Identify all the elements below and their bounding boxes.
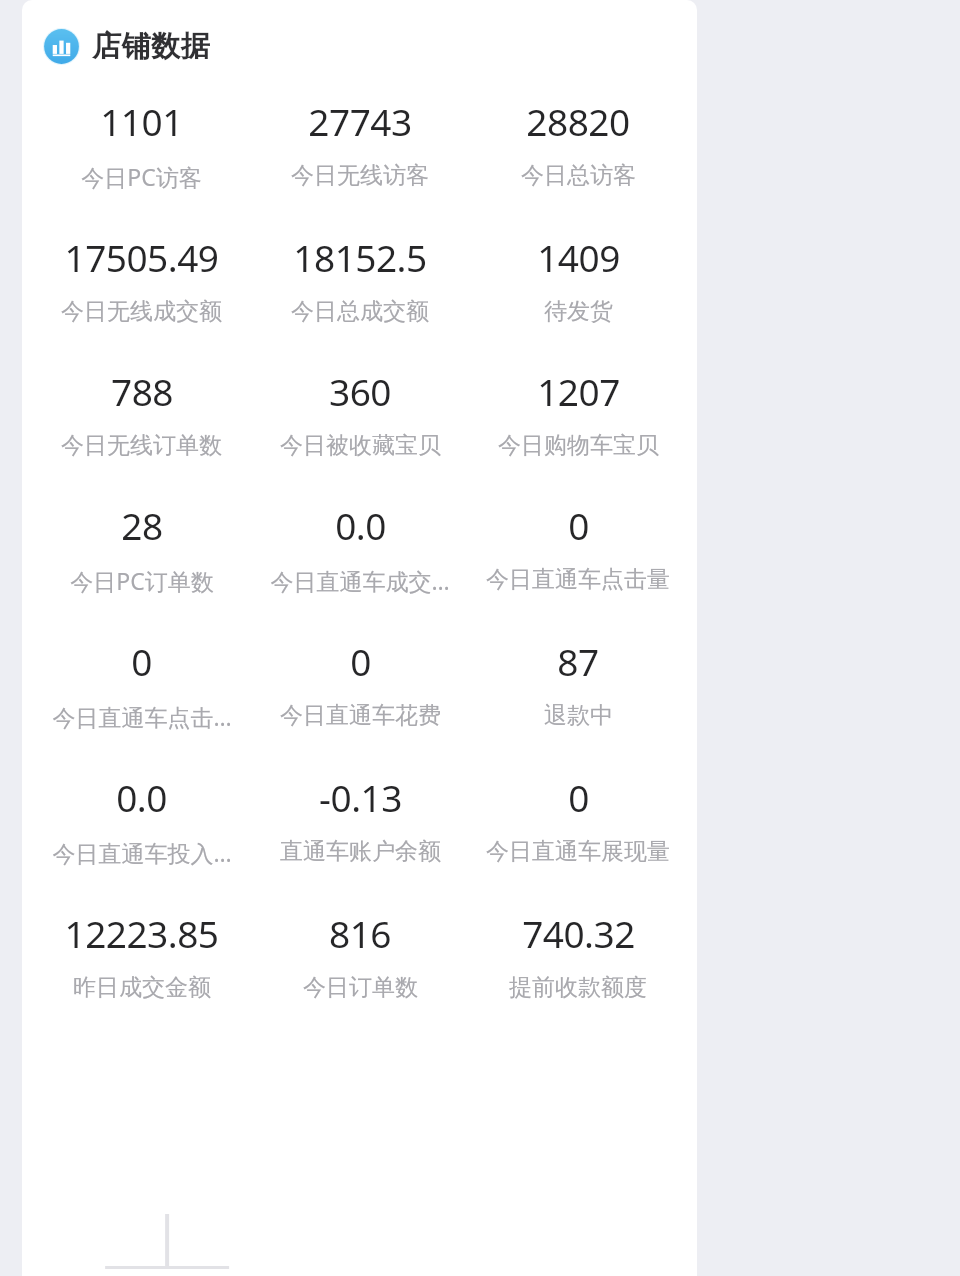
button[interactable]: 816 bbox=[251, 908, 469, 1002]
button[interactable]: 28 bbox=[32, 500, 251, 596]
staticText: 今日直通车投入… bbox=[52, 837, 232, 868]
button[interactable]: 788 bbox=[32, 366, 251, 460]
staticText: 17505.49 bbox=[64, 232, 219, 282]
other: 店铺数据 bbox=[43, 28, 80, 65]
button[interactable]: 0 bbox=[469, 500, 687, 594]
staticText: 今日直通车成交… bbox=[270, 565, 450, 596]
staticText: 店铺数据 bbox=[92, 28, 210, 65]
button[interactable]: 18152.5 bbox=[251, 232, 469, 326]
staticText: 待发货 bbox=[544, 297, 613, 326]
staticText: 今日直通车花费 bbox=[280, 701, 441, 730]
staticText: 今日直通车点击… bbox=[52, 701, 232, 732]
button[interactable]: 740.32 bbox=[469, 908, 687, 1002]
staticText: 18152.5 bbox=[293, 232, 427, 282]
button[interactable]: 12223.85 bbox=[32, 908, 251, 1002]
staticText: 28 bbox=[121, 500, 163, 550]
button[interactable]: 1409 bbox=[469, 232, 687, 326]
staticText: 1101 bbox=[100, 96, 183, 146]
staticText: 今日总访客 bbox=[521, 161, 636, 190]
button[interactable]: 1207 bbox=[469, 366, 687, 460]
staticText: 0.0 bbox=[116, 772, 167, 822]
staticText: 0 bbox=[568, 772, 589, 822]
staticText: 0 bbox=[131, 636, 152, 686]
button[interactable]: 0.0 bbox=[32, 772, 251, 868]
staticText: 1207 bbox=[537, 366, 620, 416]
staticText: 740.32 bbox=[522, 908, 635, 958]
staticText: 今日直通车展现量 bbox=[486, 837, 670, 866]
button[interactable]: 0 bbox=[251, 636, 469, 730]
button[interactable]: 0 bbox=[32, 636, 251, 732]
staticText: -0.13 bbox=[319, 772, 402, 822]
button[interactable]: 27743 bbox=[251, 96, 469, 190]
button[interactable]: -0.13 bbox=[251, 772, 469, 866]
staticText: 今日PC订单数 bbox=[70, 565, 214, 596]
staticText: 退款中 bbox=[544, 701, 613, 730]
staticText: 今日订单数 bbox=[303, 973, 418, 1002]
staticText: 今日被收藏宝贝 bbox=[280, 431, 441, 460]
staticText: 816 bbox=[329, 908, 391, 958]
staticText: 今日总成交额 bbox=[291, 297, 429, 326]
button[interactable]: 0.0 bbox=[251, 500, 469, 596]
button[interactable]: 360 bbox=[251, 366, 469, 460]
staticText: 今日无线订单数 bbox=[61, 431, 222, 460]
button[interactable]: 0 bbox=[469, 772, 687, 866]
staticText: 0 bbox=[350, 636, 371, 686]
staticText: 今日PC访客 bbox=[81, 161, 202, 192]
staticText: 提前收款额度 bbox=[509, 973, 647, 1002]
staticText: 1409 bbox=[537, 232, 620, 282]
staticText: 今日直通车点击量 bbox=[486, 565, 670, 594]
button[interactable]: 17505.49 bbox=[32, 232, 251, 326]
staticText: 今日购物车宝贝 bbox=[498, 431, 659, 460]
staticText: 0.0 bbox=[335, 500, 386, 550]
staticText: 昨日成交金额 bbox=[73, 973, 211, 1002]
staticText: 今日无线成交额 bbox=[61, 297, 222, 326]
staticText: 788 bbox=[111, 366, 173, 416]
staticText: 360 bbox=[329, 366, 391, 416]
staticText: 0 bbox=[568, 500, 589, 550]
staticText: 直通车账户余额 bbox=[280, 837, 441, 866]
button[interactable]: 28820 bbox=[469, 96, 687, 190]
staticText: 87 bbox=[557, 636, 599, 686]
staticText: 27743 bbox=[308, 96, 412, 146]
staticText: 12223.85 bbox=[64, 908, 219, 958]
button[interactable]: 1101 bbox=[32, 96, 251, 192]
button[interactable]: 87 bbox=[469, 636, 687, 730]
staticText: 今日无线访客 bbox=[291, 161, 429, 190]
button[interactable]: 店铺数据 bbox=[22, 28, 697, 65]
staticText: 28820 bbox=[526, 96, 630, 146]
